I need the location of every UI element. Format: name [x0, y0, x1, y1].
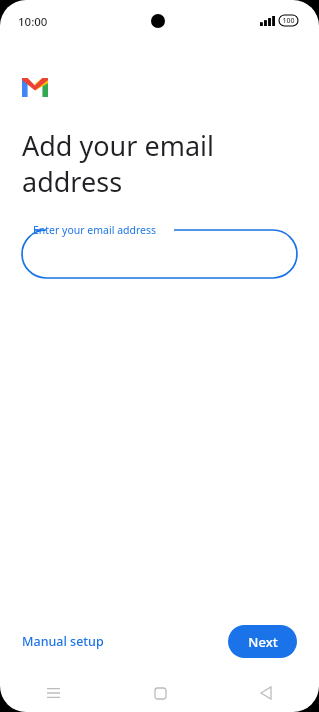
- button[interactable]: Recent apps: [0, 675, 107, 711]
- staticText: 10:00: [18, 14, 48, 30]
- staticText: Manual setup: [22, 633, 104, 650]
- button[interactable]: Back: [213, 675, 319, 711]
- staticText: Enter your email address: [33, 223, 157, 237]
- button[interactable]: Home: [107, 675, 213, 711]
- staticText: Add your email address: [22, 127, 214, 200]
- staticText: Next: [248, 633, 278, 651]
- button[interactable]: Enter your email address: [22, 222, 297, 278]
- button[interactable]: Manual setup: [22, 627, 104, 656]
- button[interactable]: Next: [228, 625, 297, 658]
- staticText: 100: [282, 16, 295, 26]
